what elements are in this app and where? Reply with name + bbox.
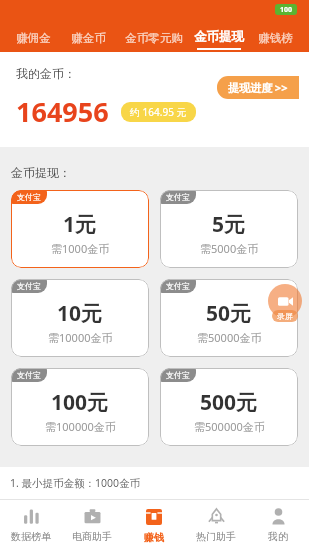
button[interactable]: 支付宝 bbox=[11, 279, 149, 357]
staticText: 需500000金币 bbox=[194, 419, 265, 434]
staticText: 需50000金币 bbox=[197, 330, 262, 345]
staticText: 支付宝 bbox=[166, 370, 190, 380]
staticText: 支付宝 bbox=[17, 370, 41, 380]
staticText: 5元 bbox=[212, 210, 246, 239]
button[interactable]: 赚佣金 bbox=[6, 31, 61, 52]
staticText: 164956 bbox=[16, 93, 109, 130]
button[interactable]: 支付宝 bbox=[11, 190, 149, 268]
button[interactable]: 支付宝 bbox=[160, 190, 298, 268]
staticText: 需5000金币 bbox=[200, 241, 259, 256]
button[interactable]: 提现进度 >> bbox=[217, 76, 299, 99]
staticText: 约 164.95 元 bbox=[130, 105, 187, 119]
staticText: 赚金币 bbox=[71, 31, 106, 45]
staticText: 支付宝 bbox=[166, 281, 190, 291]
button[interactable]: 支付宝 bbox=[160, 368, 298, 446]
staticText: 1元 bbox=[63, 210, 97, 239]
button[interactable]: 录屏 bbox=[266, 284, 304, 322]
button[interactable]: 金币零元购 bbox=[116, 31, 191, 52]
staticText: 金币提现 bbox=[194, 29, 244, 45]
staticText: 录屏 bbox=[277, 311, 293, 321]
staticText: 100 bbox=[280, 5, 293, 15]
button[interactable]: 金币提现 bbox=[191, 29, 247, 52]
staticText: 赚佣金 bbox=[16, 31, 51, 45]
staticText: 需10000金币 bbox=[48, 330, 113, 345]
staticText: 支付宝 bbox=[17, 281, 41, 291]
staticText: 赚钱榜 bbox=[258, 31, 293, 45]
staticText: 赚钱 bbox=[144, 531, 164, 544]
staticText: 数据榜单 bbox=[11, 530, 51, 543]
staticText: 50元 bbox=[206, 299, 252, 328]
button[interactable]: 赚钱 bbox=[123, 500, 185, 550]
staticText: 我的金币： bbox=[16, 66, 76, 81]
staticText: 提现进度 >> bbox=[228, 80, 288, 95]
button[interactable]: 赚金币 bbox=[61, 31, 116, 52]
staticText: 需100000金币 bbox=[45, 419, 116, 434]
staticText: 10元 bbox=[57, 299, 103, 328]
staticText: 我的 bbox=[268, 530, 288, 543]
staticText: 需1000金币 bbox=[51, 241, 110, 256]
staticText: 支付宝 bbox=[17, 192, 41, 202]
staticText: 金币提现： bbox=[11, 165, 71, 180]
button[interactable]: 支付宝 bbox=[11, 368, 149, 446]
button[interactable]: 赚钱榜 bbox=[247, 31, 303, 52]
button[interactable]: 电商助手 bbox=[61, 500, 123, 550]
button[interactable]: 数据榜单 bbox=[0, 500, 61, 550]
button[interactable]: 热门助手 bbox=[185, 500, 247, 550]
button[interactable]: 支付宝 bbox=[160, 279, 298, 357]
staticText: 电商助手 bbox=[72, 530, 112, 543]
staticText: 支付宝 bbox=[166, 192, 190, 202]
staticText: 100元 bbox=[51, 388, 109, 417]
staticText: 金币零元购 bbox=[125, 31, 183, 45]
staticText: 500元 bbox=[200, 388, 258, 417]
staticText: 热门助手 bbox=[196, 530, 236, 543]
staticText: 1. 最小提币金额：1000金币 bbox=[10, 476, 141, 490]
button[interactable]: 我的 bbox=[247, 500, 309, 550]
